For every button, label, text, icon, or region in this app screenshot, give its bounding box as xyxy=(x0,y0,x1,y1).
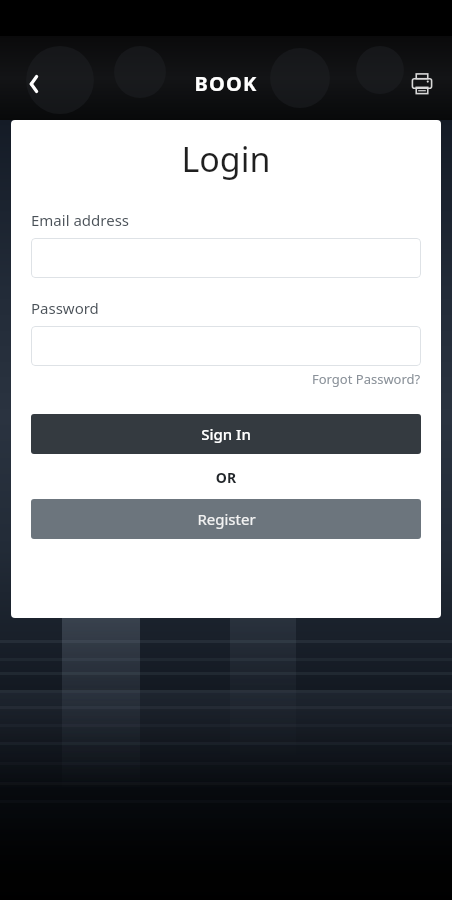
button[interactable]: Back xyxy=(12,62,56,106)
button[interactable]: Sign In xyxy=(31,414,421,454)
staticText: Login xyxy=(31,136,421,182)
staticText: Password xyxy=(31,298,99,318)
staticText: OR xyxy=(31,468,421,487)
staticText: Email address xyxy=(31,210,130,230)
button[interactable] xyxy=(31,238,421,278)
button[interactable] xyxy=(31,326,421,366)
button[interactable]: Forgot Password? xyxy=(312,370,421,388)
staticText: BOOK xyxy=(194,70,258,97)
staticText: Sign In xyxy=(201,424,251,444)
button[interactable]: Print xyxy=(400,62,444,106)
staticText: Register xyxy=(197,509,256,529)
staticText: Forgot Password? xyxy=(312,370,421,388)
button[interactable]: Register xyxy=(31,499,421,539)
